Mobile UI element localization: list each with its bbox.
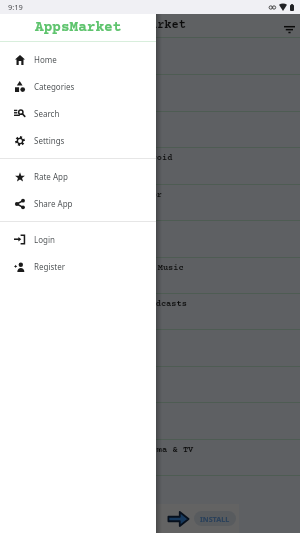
button[interactable]: Login <box>0 226 156 253</box>
staticText: Categories <box>34 81 75 92</box>
staticText: Share App <box>34 198 73 209</box>
staticText: 9:19 <box>8 2 23 12</box>
staticText: Login <box>34 234 55 245</box>
button[interactable] <box>0 111 300 147</box>
button[interactable]: Android <box>0 147 300 183</box>
staticText: Radio Podcasts <box>114 299 187 309</box>
staticText: Rate App <box>34 171 68 182</box>
button[interactable]: Humor <box>0 184 300 220</box>
button[interactable]: Filter <box>280 22 298 37</box>
button[interactable] <box>0 38 300 74</box>
button[interactable]: Audio & Music <box>0 257 300 293</box>
staticText: Search <box>34 108 60 119</box>
button[interactable]: Register <box>0 253 156 280</box>
button[interactable]: Rate App <box>0 163 156 190</box>
staticText: INSTALL <box>200 514 230 524</box>
button[interactable]: Settings <box>0 127 156 154</box>
button[interactable]: Search <box>0 100 156 127</box>
button[interactable]: Radio Podcasts <box>0 293 300 329</box>
button[interactable]: Categories <box>0 73 156 100</box>
button[interactable]: INSTALL <box>0 504 239 533</box>
staticText: Home <box>34 54 57 65</box>
staticText: AppsMarket <box>35 20 122 36</box>
staticText: Humor <box>136 190 163 200</box>
staticText: Audio & Music <box>116 263 184 273</box>
button[interactable] <box>0 366 300 402</box>
button[interactable]: Share App <box>0 190 156 217</box>
button[interactable]: Home <box>0 46 156 73</box>
staticText: Register <box>34 261 66 272</box>
button[interactable]: Cinema & TV <box>0 439 300 475</box>
button[interactable]: INSTALL <box>194 511 236 526</box>
button[interactable] <box>0 74 300 110</box>
button[interactable] <box>0 220 300 256</box>
button[interactable] <box>0 475 300 511</box>
staticText: Android <box>136 153 173 163</box>
button[interactable] <box>0 402 300 438</box>
staticText: Settings <box>34 135 65 146</box>
staticText: Cinema & TV <box>136 445 194 455</box>
button[interactable] <box>0 329 300 365</box>
staticText: AppsMarket <box>114 19 186 32</box>
